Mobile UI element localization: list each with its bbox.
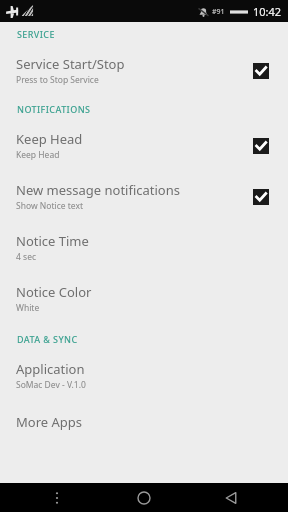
button[interactable]: New message notifications — [0, 176, 288, 217]
button[interactable]: Toggle — [248, 184, 274, 210]
button[interactable]: Home — [124, 483, 164, 512]
button[interactable]: Notice Time — [0, 227, 288, 268]
button[interactable]: Keep Head — [0, 125, 288, 166]
staticText: #91 — [212, 7, 225, 17]
staticText: 4 sec — [16, 251, 37, 263]
staticText: Application — [16, 360, 85, 378]
staticText: 10:42 — [253, 4, 282, 19]
staticText: More Apps — [16, 413, 83, 431]
staticText: Keep Head — [16, 130, 83, 148]
staticText: Keep Head — [16, 149, 60, 161]
button[interactable]: More Apps — [0, 408, 288, 436]
staticText: SERVICE — [17, 28, 55, 40]
staticText: White — [16, 302, 40, 314]
staticText: New message notifications — [16, 181, 180, 199]
staticText: Service Start/Stop — [16, 55, 125, 73]
button[interactable]: Back — [211, 483, 251, 512]
staticText: Press to Stop Service — [16, 74, 99, 86]
button[interactable]: Menu — [37, 483, 77, 512]
button[interactable]: Application — [0, 355, 288, 396]
button[interactable]: Toggle — [248, 58, 274, 84]
button[interactable]: Notice Color — [0, 278, 288, 319]
staticText: DATA & SYNC — [17, 333, 78, 345]
staticText: SoMac Dev - V.1.0 — [16, 379, 86, 391]
button[interactable]: Toggle — [248, 133, 274, 159]
staticText: NOTIFICATIONS — [17, 103, 91, 115]
staticText: Notice Color — [16, 283, 92, 301]
button[interactable]: Service Start/Stop — [0, 50, 288, 91]
staticText: Notice Time — [16, 232, 89, 250]
staticText: Show Notice text — [16, 200, 83, 212]
